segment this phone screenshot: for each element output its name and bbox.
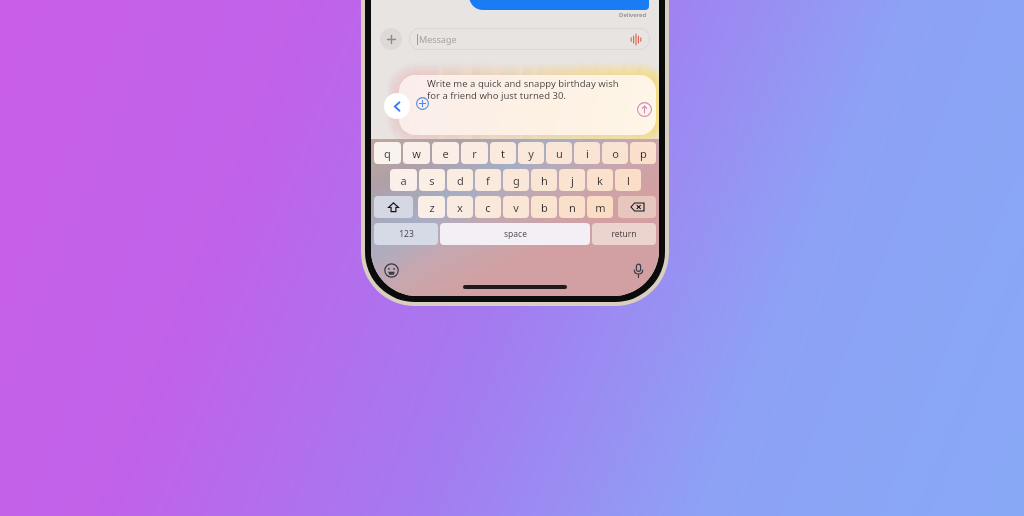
button[interactable]: m bbox=[587, 196, 613, 218]
staticText: w bbox=[412, 146, 421, 161]
staticText: return bbox=[611, 228, 637, 240]
button[interactable]: q bbox=[374, 142, 401, 164]
button[interactable]: Send bbox=[637, 102, 652, 117]
button[interactable]: Key bbox=[618, 196, 656, 218]
staticText: h bbox=[541, 173, 548, 188]
staticText: Write me a quick and snappy birthday wis… bbox=[427, 77, 633, 102]
staticText: r bbox=[472, 146, 477, 161]
staticText: a bbox=[400, 173, 407, 188]
button[interactable]: t bbox=[490, 142, 516, 164]
button[interactable]: y bbox=[518, 142, 544, 164]
button[interactable]: Message bbox=[409, 28, 650, 50]
button[interactable]: p bbox=[630, 142, 656, 164]
button[interactable]: e bbox=[432, 142, 459, 164]
button[interactable] bbox=[469, 0, 649, 10]
staticText: c bbox=[485, 200, 491, 215]
staticText: m bbox=[595, 200, 606, 215]
other: Shift bbox=[388, 202, 399, 213]
button[interactable]: Back bbox=[384, 93, 410, 119]
staticText: g bbox=[513, 173, 520, 188]
button[interactable]: b bbox=[531, 196, 557, 218]
staticText: i bbox=[586, 146, 589, 161]
staticText: Delivered bbox=[619, 11, 647, 19]
staticText: j bbox=[571, 173, 574, 188]
button[interactable]: c bbox=[475, 196, 501, 218]
button[interactable]: f bbox=[475, 169, 501, 191]
button[interactable]: return bbox=[592, 223, 656, 245]
other: Audio message bbox=[630, 34, 642, 45]
button[interactable]: r bbox=[461, 142, 488, 164]
staticText: n bbox=[569, 200, 576, 215]
button[interactable]: a bbox=[390, 169, 417, 191]
button[interactable]: d bbox=[447, 169, 473, 191]
button[interactable]: z bbox=[418, 196, 445, 218]
staticText: l bbox=[627, 173, 630, 188]
staticText: z bbox=[429, 200, 435, 215]
staticText: t bbox=[501, 146, 505, 161]
staticText: p bbox=[640, 146, 647, 161]
staticText: s bbox=[429, 173, 435, 188]
staticText: q bbox=[384, 146, 391, 161]
staticText: u bbox=[556, 146, 563, 161]
staticText: space bbox=[504, 228, 527, 240]
button[interactable]: Write me a quick and snappy birthday wis… bbox=[427, 77, 633, 102]
button[interactable]: v bbox=[503, 196, 529, 218]
staticText: b bbox=[541, 200, 548, 215]
button[interactable]: Emoji bbox=[384, 263, 399, 278]
button[interactable]: space bbox=[440, 223, 590, 245]
button[interactable]: u bbox=[546, 142, 572, 164]
button[interactable]: Dictate bbox=[631, 263, 646, 278]
staticText: v bbox=[513, 200, 519, 215]
button[interactable]: w bbox=[403, 142, 430, 164]
staticText: k bbox=[597, 173, 603, 188]
staticText: y bbox=[528, 146, 534, 161]
button[interactable]: Add bbox=[416, 97, 429, 110]
staticText: x bbox=[457, 200, 463, 215]
button[interactable]: i bbox=[574, 142, 600, 164]
staticText: e bbox=[442, 146, 449, 161]
button[interactable]: l bbox=[615, 169, 641, 191]
button[interactable]: h bbox=[531, 169, 557, 191]
button[interactable]: x bbox=[447, 196, 473, 218]
staticText: 123 bbox=[399, 228, 414, 240]
button[interactable]: n bbox=[559, 196, 585, 218]
button[interactable]: o bbox=[602, 142, 628, 164]
other: Delete bbox=[630, 202, 644, 212]
staticText: o bbox=[612, 146, 619, 161]
button[interactable]: j bbox=[559, 169, 585, 191]
button[interactable]: Key bbox=[374, 196, 413, 218]
button[interactable]: 123 bbox=[374, 223, 438, 245]
button[interactable]: k bbox=[587, 169, 613, 191]
button[interactable]: g bbox=[503, 169, 529, 191]
staticText: f bbox=[486, 173, 490, 188]
button[interactable]: Add attachment bbox=[380, 28, 402, 50]
staticText: Message bbox=[419, 33, 457, 45]
staticText: d bbox=[457, 173, 464, 188]
button[interactable]: s bbox=[419, 169, 445, 191]
